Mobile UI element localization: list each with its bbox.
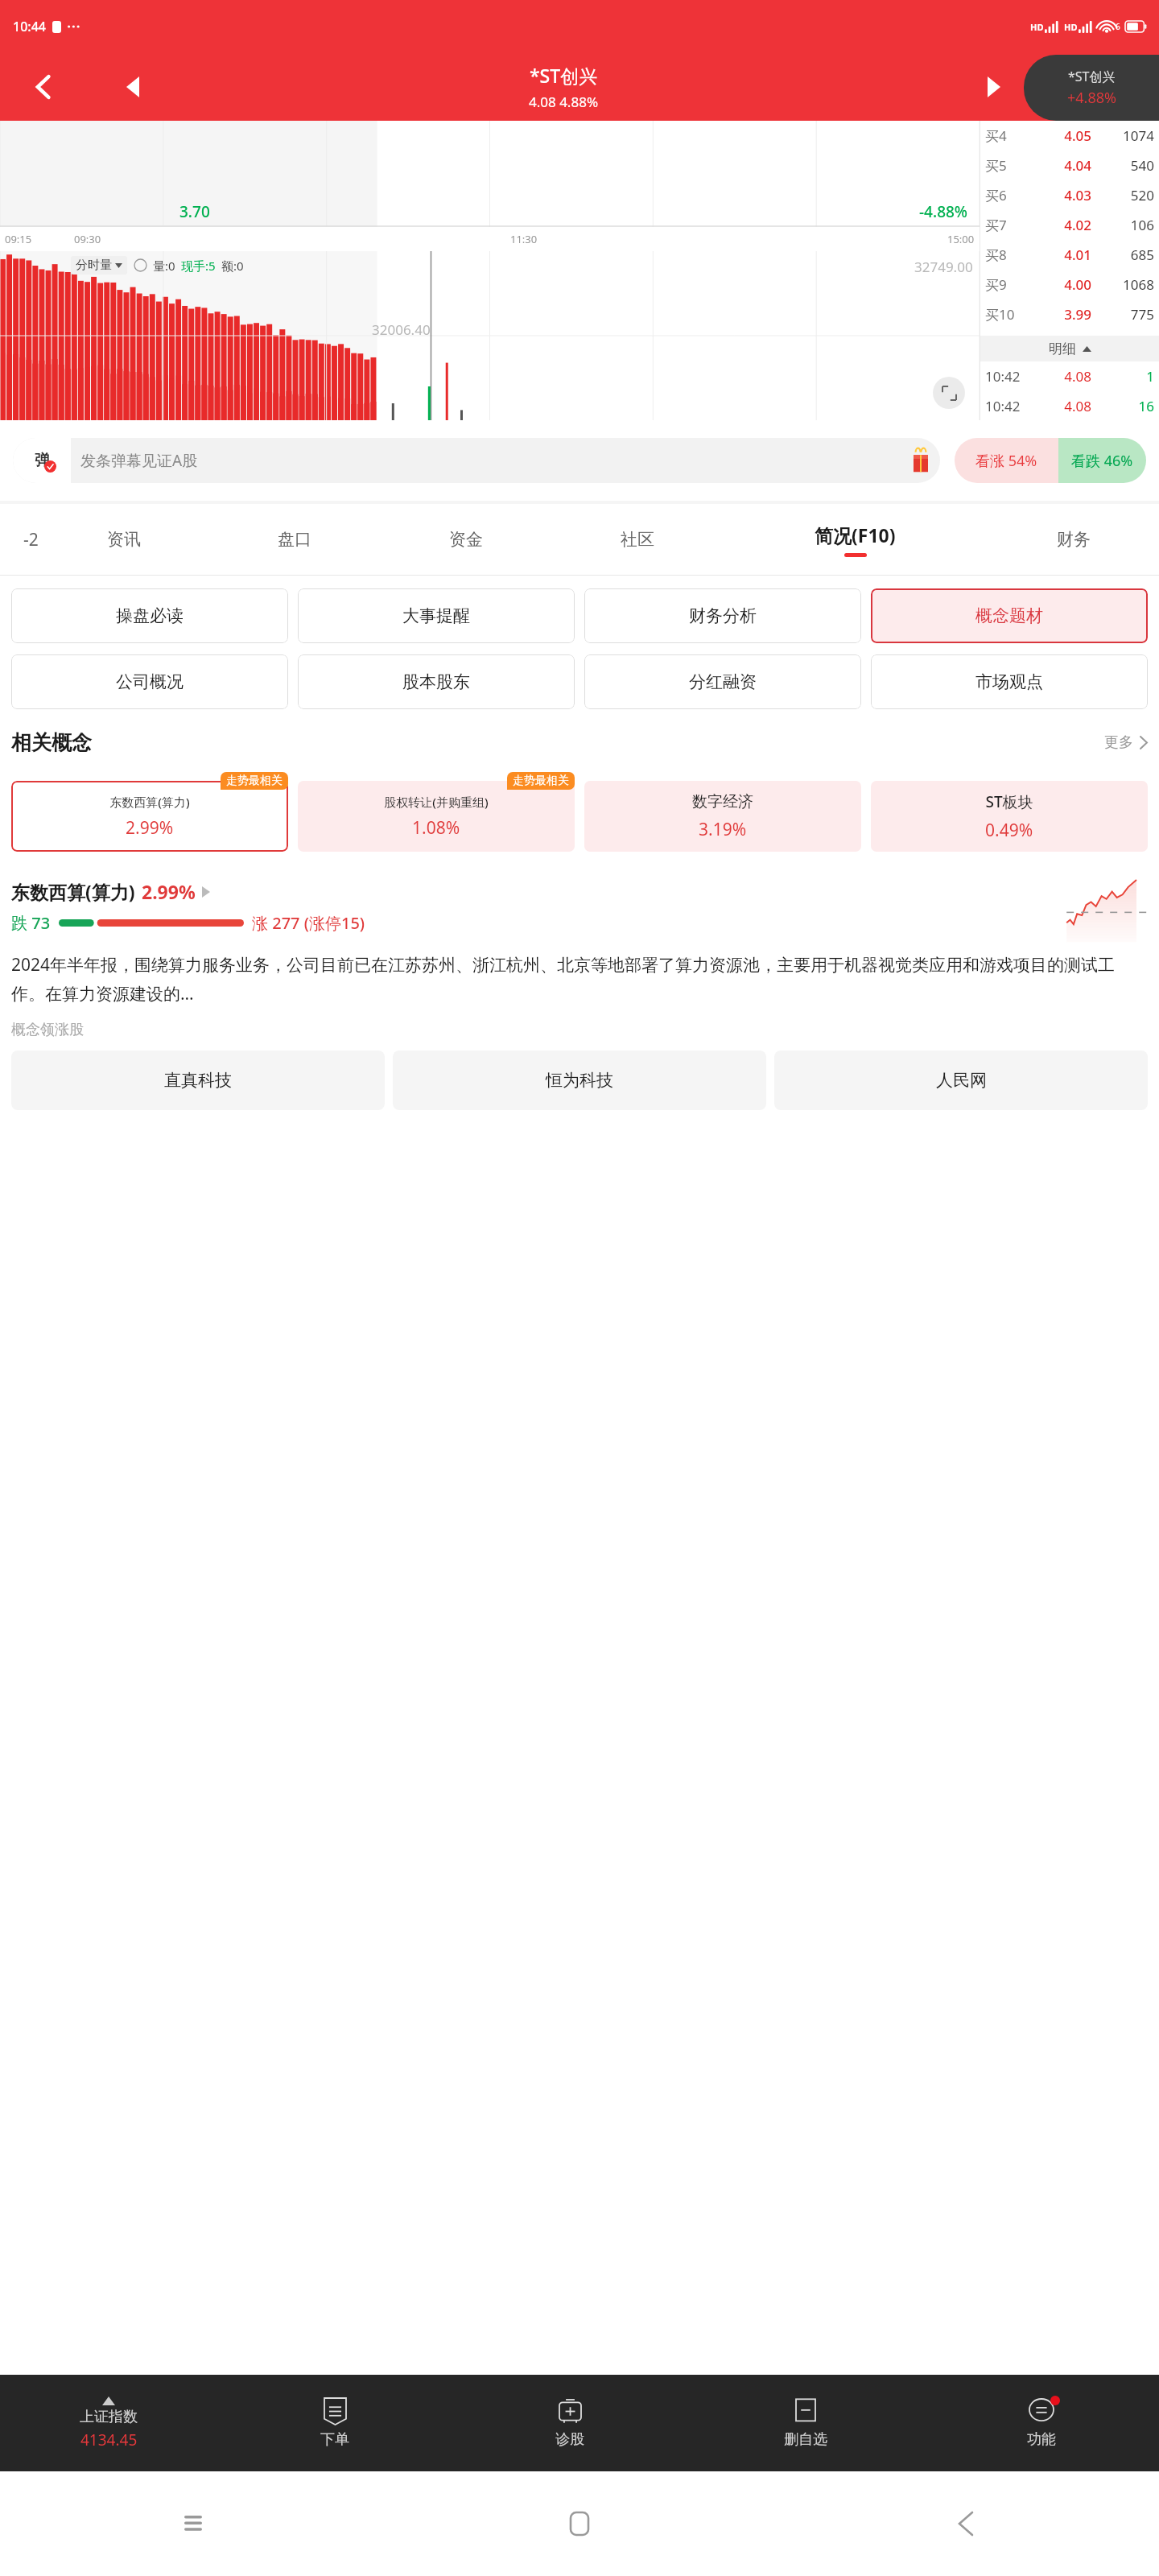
staticText: HD	[1064, 21, 1078, 33]
button[interactable]: Back	[0, 53, 89, 121]
button[interactable]: 概念题材	[871, 588, 1148, 643]
staticText: 1074	[1091, 126, 1154, 145]
staticText: 4.05	[1032, 126, 1091, 145]
staticText: 走势最相关	[513, 774, 569, 788]
staticText: 09:30	[74, 232, 101, 246]
staticText: 跌 73	[11, 912, 51, 934]
staticText: 资金	[449, 529, 483, 550]
button[interactable]: 买5	[980, 151, 1159, 180]
button[interactable]: 操盘必读	[11, 588, 288, 643]
button[interactable]: 公司概况	[11, 654, 288, 709]
button[interactable]: 诊股	[452, 2375, 687, 2471]
button[interactable]: 数字经济	[584, 781, 861, 852]
button[interactable]: 简况(F10)	[723, 504, 988, 575]
staticText: 涨 277 (涨停15)	[252, 912, 365, 934]
button[interactable]: 相关概念	[11, 730, 1148, 755]
staticText: ST板块	[985, 791, 1033, 812]
staticText: 4.00	[1032, 275, 1091, 294]
staticText: 2.99%	[126, 816, 174, 840]
button[interactable]: 10:42	[980, 391, 1159, 420]
button[interactable]: 删自选	[687, 2375, 923, 2471]
button[interactable]: Next stock	[950, 53, 1038, 121]
button[interactable]: 买4	[980, 121, 1159, 151]
button[interactable]: ST板块	[871, 781, 1148, 852]
staticText: 4.03	[1032, 186, 1091, 204]
staticText: 4.02	[1032, 216, 1091, 234]
staticText: 520	[1091, 186, 1154, 204]
button[interactable]: 买9	[980, 270, 1159, 299]
button[interactable]: 财务分析	[584, 588, 861, 643]
staticText: 1	[1091, 367, 1154, 386]
staticText: 分红融资	[689, 671, 757, 692]
staticText: 2024年半年报，围绕算力服务业务，公司目前已在江苏苏州、浙江杭州、北京等地部署…	[11, 953, 1148, 1005]
staticText: 4.08	[1038, 367, 1091, 386]
staticText: 市场观点	[975, 671, 1043, 692]
staticText: 买5	[985, 156, 1032, 175]
button[interactable]: 分时量	[76, 258, 122, 273]
button[interactable]: 明细	[980, 336, 1159, 361]
button[interactable]: Back	[773, 2471, 1159, 2576]
staticText: 买4	[985, 126, 1032, 145]
staticText: 下单	[320, 2430, 349, 2449]
button[interactable]: 上证指数	[0, 2375, 217, 2471]
button[interactable]: -2	[0, 504, 39, 575]
button[interactable]: 买7	[980, 210, 1159, 240]
staticText: 财务分析	[689, 605, 757, 626]
button[interactable]: 下单	[217, 2375, 452, 2471]
button[interactable]: 财务	[988, 504, 1159, 575]
button[interactable]: 功能	[923, 2375, 1159, 2471]
staticText: 恒为科技	[546, 1070, 613, 1091]
staticText: 数字经济	[692, 792, 753, 811]
button[interactable]: *ST创兴	[177, 63, 950, 111]
button[interactable]: 市场观点	[871, 654, 1148, 709]
staticText: 股本股东	[402, 671, 470, 692]
staticText: *ST创兴	[530, 63, 598, 88]
staticText: 4134.45	[80, 2429, 138, 2450]
staticText: 685	[1091, 246, 1154, 264]
staticText: 4.08	[1038, 397, 1091, 415]
staticText: 功能	[1027, 2430, 1056, 2449]
button[interactable]: Fullscreen	[933, 377, 965, 409]
staticText: 分时量	[76, 258, 112, 273]
button[interactable]: 盘口	[209, 504, 380, 575]
button[interactable]: 股权转让(并购重组)	[298, 781, 575, 852]
button[interactable]: 10:42	[980, 361, 1159, 391]
staticText: 走势最相关	[226, 774, 283, 788]
button[interactable]: Home	[386, 2471, 773, 2576]
staticText: 更多	[1104, 733, 1133, 752]
staticText: 3.70	[179, 201, 210, 222]
button[interactable]: 买10	[980, 299, 1159, 329]
staticText: 1068	[1091, 275, 1154, 294]
button[interactable]: 直真科技	[11, 1051, 385, 1110]
staticText: 10:42	[985, 397, 1038, 415]
button[interactable]: 看涨 54%	[955, 438, 1146, 483]
staticText: 资讯	[107, 529, 141, 550]
button[interactable]: 买8	[980, 240, 1159, 270]
button[interactable]: 资金	[380, 504, 551, 575]
staticText: 股权转让(并购重组)	[384, 794, 489, 810]
staticText: 15:00	[947, 232, 975, 246]
button[interactable]: Previous stock	[89, 53, 177, 121]
staticText: 现手:5	[181, 258, 216, 274]
staticText: 明细	[1049, 341, 1076, 357]
staticText: 10:42	[985, 367, 1038, 386]
staticText: 买10	[985, 305, 1032, 324]
staticText: 删自选	[784, 2430, 827, 2449]
button[interactable]: Recents	[0, 2471, 386, 2576]
button[interactable]: *ST创兴	[1024, 55, 1159, 121]
staticText: 直真科技	[164, 1070, 232, 1091]
staticText: 东数西算(算力)	[109, 794, 190, 810]
button[interactable]: 人民网	[774, 1051, 1148, 1110]
button[interactable]: 社区	[551, 504, 723, 575]
staticText: 3.19%	[699, 818, 747, 841]
staticText: HD	[1030, 21, 1044, 33]
staticText: 买9	[985, 275, 1032, 294]
button[interactable]: 买6	[980, 180, 1159, 210]
button[interactable]: 股本股东	[298, 654, 575, 709]
button[interactable]: 分红融资	[584, 654, 861, 709]
button[interactable]: 资讯	[39, 504, 209, 575]
button[interactable]: 东数西算(算力)	[11, 781, 288, 852]
button[interactable]: 弹	[13, 438, 940, 483]
button[interactable]: 大事提醒	[298, 588, 575, 643]
button[interactable]: 恒为科技	[393, 1051, 766, 1110]
